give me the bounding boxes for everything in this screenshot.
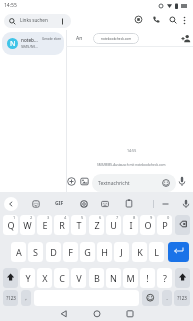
staticText: 4 bbox=[64, 215, 67, 220]
button[interactable]: Textnachricht bbox=[92, 174, 176, 192]
button[interactable]: ?123 bbox=[3, 290, 18, 306]
staticText: ?123 bbox=[6, 295, 16, 301]
staticText: V bbox=[76, 272, 82, 284]
staticText: notebookcheck.com bbox=[101, 37, 132, 41]
staticText: O bbox=[144, 219, 152, 231]
button[interactable]: V bbox=[71, 268, 86, 288]
staticText: T bbox=[76, 219, 82, 231]
staticText: B bbox=[94, 272, 100, 284]
button[interactable]: J bbox=[114, 242, 129, 262]
button[interactable]: O bbox=[140, 215, 155, 235]
button[interactable]: E bbox=[37, 215, 52, 235]
staticText: E bbox=[42, 219, 48, 231]
button[interactable]: notebookcheck.com bbox=[93, 33, 139, 44]
staticText: noteb... bbox=[21, 37, 38, 43]
staticText: U bbox=[110, 219, 117, 231]
staticText: F bbox=[68, 246, 73, 258]
button[interactable] bbox=[175, 215, 190, 235]
staticText: G bbox=[84, 246, 91, 258]
button[interactable]: F bbox=[63, 242, 78, 262]
button[interactable]: I bbox=[123, 215, 138, 235]
button[interactable] bbox=[182, 16, 187, 25]
button[interactable] bbox=[178, 176, 186, 188]
staticText: An bbox=[76, 35, 83, 42]
button[interactable]: Links suchen bbox=[4, 14, 71, 28]
button[interactable]: GIF bbox=[52, 198, 66, 209]
staticText: SMS/MMS-Austausch mit notebookcheck.com bbox=[97, 163, 166, 167]
button[interactable]: D bbox=[46, 242, 61, 262]
button[interactable] bbox=[175, 268, 190, 288]
staticText: H bbox=[101, 246, 108, 258]
button[interactable] bbox=[182, 199, 190, 209]
button[interactable] bbox=[4, 197, 18, 211]
button[interactable]: P bbox=[157, 215, 172, 235]
button[interactable]: Z bbox=[89, 215, 104, 235]
button[interactable] bbox=[101, 200, 109, 208]
staticText: D bbox=[50, 246, 57, 258]
button[interactable] bbox=[60, 310, 68, 318]
button[interactable]: U bbox=[106, 215, 121, 235]
staticText: Q bbox=[7, 219, 15, 231]
staticText: ?123 bbox=[177, 295, 187, 301]
button[interactable]: L bbox=[149, 242, 164, 262]
staticText: C bbox=[59, 272, 65, 284]
staticText: , bbox=[25, 294, 27, 302]
button[interactable] bbox=[93, 310, 101, 318]
button[interactable]: Q bbox=[3, 215, 18, 235]
staticText: 5 bbox=[81, 215, 84, 220]
staticText: Gerade eben bbox=[42, 37, 62, 41]
staticText: 2 bbox=[30, 215, 33, 220]
button[interactable]: G bbox=[80, 242, 95, 262]
staticText: 14:55 bbox=[4, 2, 17, 9]
button[interactable] bbox=[126, 310, 134, 318]
button[interactable] bbox=[80, 200, 88, 208]
button[interactable] bbox=[161, 200, 170, 208]
staticText: 14:55 bbox=[127, 148, 137, 153]
staticText: I bbox=[129, 219, 133, 231]
button[interactable]: N bbox=[2, 32, 64, 55]
button[interactable]: ! bbox=[140, 268, 155, 288]
button[interactable]: T bbox=[71, 215, 86, 235]
button[interactable] bbox=[134, 15, 143, 24]
staticText: SMS/M... bbox=[21, 44, 39, 50]
staticText: ! bbox=[146, 272, 149, 284]
button[interactable] bbox=[67, 177, 76, 186]
button[interactable] bbox=[152, 15, 161, 24]
button[interactable]: W bbox=[20, 215, 35, 235]
staticText: 8 bbox=[133, 215, 136, 220]
button[interactable]: Y bbox=[20, 268, 35, 288]
staticText: L bbox=[154, 246, 159, 258]
button[interactable]: A bbox=[11, 242, 26, 262]
staticText: Y bbox=[25, 272, 31, 284]
staticText: W bbox=[23, 219, 32, 231]
button[interactable] bbox=[169, 16, 178, 25]
button[interactable]: B bbox=[89, 268, 104, 288]
button[interactable]: ? bbox=[157, 268, 172, 288]
button[interactable]: H bbox=[97, 242, 112, 262]
staticText: Textnachricht bbox=[98, 180, 130, 187]
staticText: 3 bbox=[47, 215, 50, 220]
button[interactable] bbox=[32, 200, 40, 208]
button[interactable] bbox=[168, 242, 189, 262]
button[interactable]: C bbox=[54, 268, 69, 288]
staticText: P bbox=[162, 219, 168, 231]
button[interactable]: K bbox=[132, 242, 147, 262]
button[interactable]: R bbox=[54, 215, 69, 235]
button[interactable] bbox=[80, 177, 89, 186]
button[interactable] bbox=[142, 290, 159, 306]
staticText: Links suchen bbox=[20, 17, 48, 23]
button[interactable]: M bbox=[123, 268, 138, 288]
button[interactable]: S bbox=[28, 242, 43, 262]
staticText: 9 bbox=[150, 215, 153, 220]
button[interactable]: X bbox=[37, 268, 52, 288]
button[interactable]: . bbox=[162, 290, 172, 306]
button[interactable]: N bbox=[106, 268, 121, 288]
button[interactable]: , bbox=[21, 290, 31, 306]
button[interactable] bbox=[181, 34, 191, 43]
button[interactable]: ?123 bbox=[174, 290, 190, 306]
button[interactable] bbox=[125, 199, 133, 208]
staticText: R bbox=[59, 219, 65, 231]
button[interactable] bbox=[3, 268, 18, 288]
staticText: . bbox=[166, 294, 168, 302]
